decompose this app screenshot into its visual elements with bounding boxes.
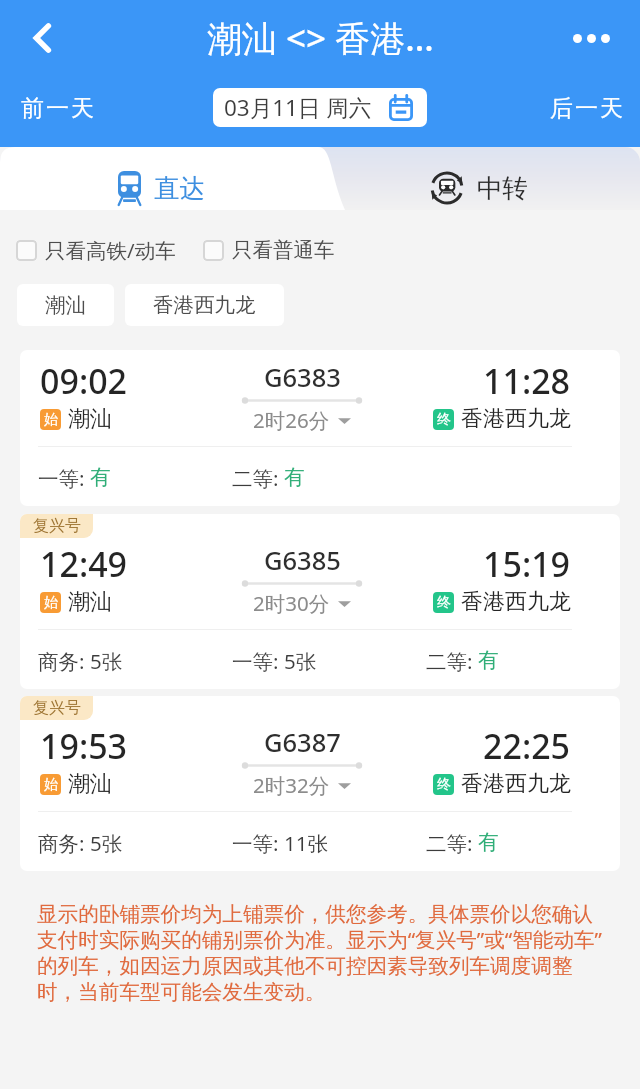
staticText: 商务: xyxy=(38,829,90,857)
staticText: 22:25 xyxy=(483,723,571,769)
staticText: 商务: xyxy=(38,647,90,675)
staticText: 香港西九龙 xyxy=(461,588,571,616)
staticText: 后一天 xyxy=(549,94,624,123)
staticText: G6385 xyxy=(264,543,341,578)
staticText: 2时30分 xyxy=(253,589,330,617)
button[interactable]: More options xyxy=(561,8,621,68)
staticText: 有 xyxy=(90,464,111,490)
staticText: 2时32分 xyxy=(253,771,330,799)
button[interactable]: 香港西九龙 xyxy=(125,284,284,326)
button[interactable]: 潮汕 xyxy=(17,284,114,326)
staticText: 12:49 xyxy=(40,541,128,587)
staticText: 潮汕 xyxy=(68,770,112,798)
staticText: 19:53 xyxy=(40,723,128,769)
button[interactable]: 直达 xyxy=(0,147,330,210)
staticText: 一等: xyxy=(38,464,90,492)
button[interactable]: 后一天 xyxy=(545,88,628,129)
button[interactable]: 只看高铁/动车 xyxy=(16,236,176,264)
button[interactable]: 复兴号 xyxy=(20,514,620,689)
staticText: 11张 xyxy=(284,829,328,857)
staticText: 2时26分 xyxy=(253,406,330,434)
staticText: 香港西九龙 xyxy=(461,405,571,433)
staticText: 有 xyxy=(478,647,499,673)
staticText: 二等: xyxy=(426,647,478,675)
staticText: 潮汕 xyxy=(45,292,86,318)
button[interactable]: Back xyxy=(12,8,72,68)
staticText: 有 xyxy=(478,829,499,855)
staticText: 有 xyxy=(284,464,305,490)
staticText: 5张 xyxy=(90,647,123,675)
staticText: 只看普通车 xyxy=(232,237,335,263)
staticText: 潮汕 xyxy=(68,405,112,433)
staticText: 始 xyxy=(44,411,58,429)
staticText: 始 xyxy=(44,594,58,612)
staticText: G6387 xyxy=(264,725,341,760)
staticText: 显示的卧铺票价均为上铺票价，供您参考。具体票价以您确认 支付时实际购买的铺别票价… xyxy=(37,901,603,1006)
staticText: 5张 xyxy=(90,829,123,857)
button[interactable]: 前一天 xyxy=(16,88,99,129)
staticText: 只看高铁/动车 xyxy=(45,236,176,264)
staticText: 09:02 xyxy=(40,358,128,404)
staticText: 复兴号 xyxy=(33,698,81,718)
staticText: 二等: xyxy=(232,464,284,492)
staticText: 潮汕 <> 香港... xyxy=(207,14,434,62)
staticText: 15:19 xyxy=(483,541,571,587)
staticText: G6383 xyxy=(264,360,341,395)
staticText: 中转 xyxy=(477,172,528,204)
button[interactable]: 09:02 xyxy=(20,350,620,506)
button[interactable]: 只看普通车 xyxy=(203,237,335,263)
button[interactable]: 复兴号 xyxy=(20,696,620,871)
staticText: 11:28 xyxy=(483,358,571,404)
staticText: 一等: xyxy=(232,829,284,857)
staticText: 前一天 xyxy=(20,94,95,123)
staticText: 复兴号 xyxy=(33,516,81,536)
staticText: 潮汕 xyxy=(68,588,112,616)
staticText: 香港西九龙 xyxy=(153,292,256,318)
staticText: 二等: xyxy=(426,829,478,857)
staticText: 香港西九龙 xyxy=(461,770,571,798)
staticText: 始 xyxy=(44,776,58,794)
staticText: 终 xyxy=(437,411,451,429)
staticText: 5张 xyxy=(284,647,317,675)
staticText: 直达 xyxy=(154,172,205,204)
button[interactable]: 中转 xyxy=(340,147,640,210)
staticText: 03月11日 周六 xyxy=(224,92,372,123)
staticText: 终 xyxy=(437,594,451,612)
staticText: 一等: xyxy=(232,647,284,675)
staticText: 终 xyxy=(437,776,451,794)
button[interactable]: 03月11日 周六 xyxy=(213,88,427,127)
